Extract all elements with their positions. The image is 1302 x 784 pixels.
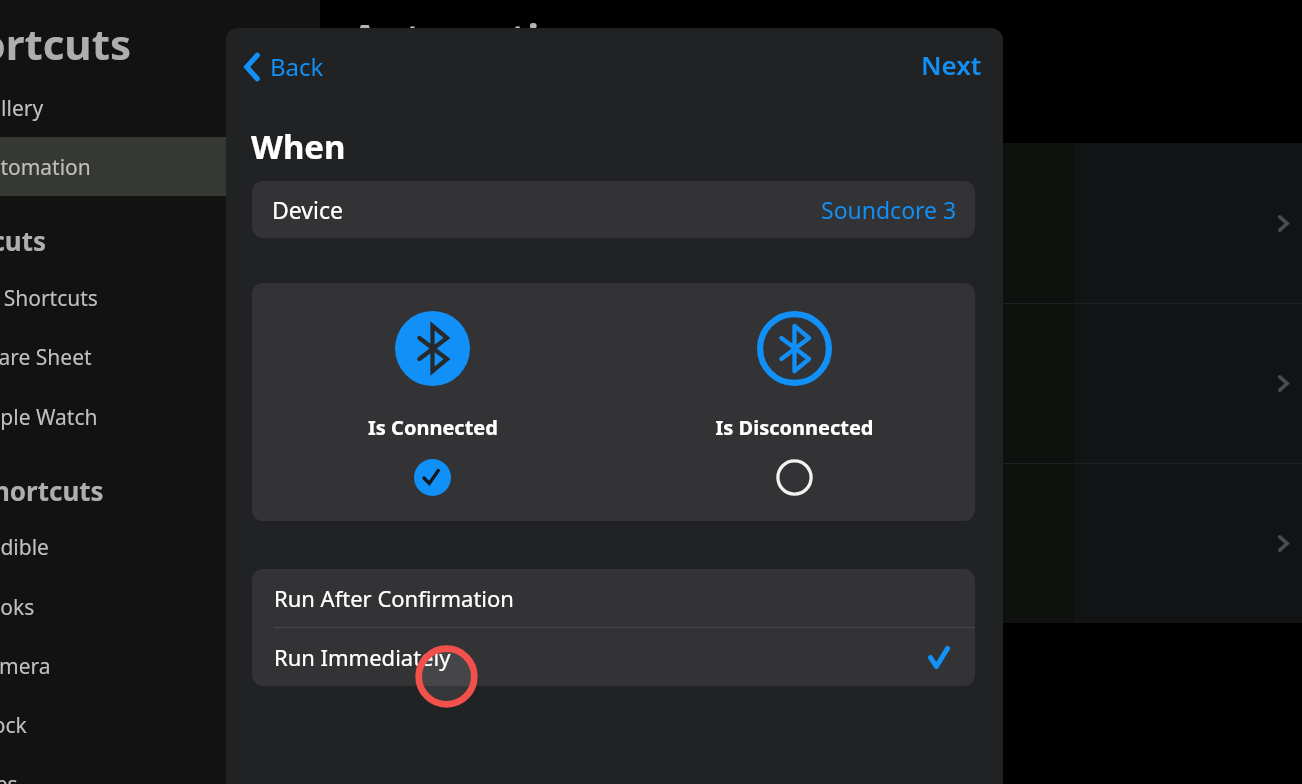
button[interactable]: Books <box>0 578 320 637</box>
staticText: Run After Confirmation <box>274 583 514 613</box>
button[interactable]: Open automation <box>0 463 1302 623</box>
staticText: Automation <box>0 153 91 182</box>
button[interactable]: Run Immediately <box>252 628 975 686</box>
staticText: Soundcore 3 <box>821 194 957 225</box>
staticText: Device <box>272 194 343 225</box>
staticText: Shortcuts <box>0 15 131 72</box>
staticText: Is Disconnected <box>715 414 874 441</box>
staticText: Gallery <box>0 94 44 123</box>
button[interactable]: Gallery <box>0 79 320 138</box>
staticText: All Shortcuts <box>0 284 98 313</box>
button[interactable]: Back <box>235 42 330 91</box>
button[interactable]: All Shortcuts <box>0 269 320 328</box>
button[interactable]: Open automation <box>0 303 1302 463</box>
button[interactable]: Clock <box>0 696 320 755</box>
button[interactable]: Camera <box>0 637 320 696</box>
other: Selected <box>928 646 950 669</box>
staticText: Camera <box>0 652 51 681</box>
button[interactable]: Automation <box>0 138 320 197</box>
staticText: App Shortcuts <box>0 473 104 508</box>
button[interactable]: Share Sheet <box>0 328 320 387</box>
staticText: Run Immediately <box>274 642 451 672</box>
button[interactable]: Is Connected <box>252 283 613 521</box>
other: Open automation <box>1278 535 1289 552</box>
staticText: Shortcuts <box>0 223 47 258</box>
staticText: Audible <box>0 533 49 562</box>
staticText: Clock <box>0 711 27 740</box>
button[interactable]: Open automation <box>0 143 1302 303</box>
button[interactable]: Next <box>913 39 990 90</box>
staticText: Files <box>0 770 18 784</box>
button[interactable]: Audible <box>0 518 320 577</box>
other: Open automation <box>1278 375 1289 392</box>
staticText: Books <box>0 593 35 622</box>
button[interactable]: Device <box>252 181 975 238</box>
button[interactable]: Apple Watch <box>0 388 320 447</box>
staticText: Back <box>270 50 324 83</box>
staticText: Next <box>921 47 982 82</box>
staticText: When <box>251 124 346 169</box>
staticText: Is Connected <box>368 414 498 441</box>
staticText: Automation <box>351 10 591 64</box>
button[interactable]: Run After Confirmation <box>252 569 975 627</box>
staticText: Apple Watch <box>0 403 98 432</box>
button[interactable]: Files <box>0 755 320 784</box>
staticText: Share Sheet <box>0 343 92 372</box>
button[interactable]: Is Disconnected <box>613 283 975 521</box>
other: Open automation <box>1278 215 1289 232</box>
